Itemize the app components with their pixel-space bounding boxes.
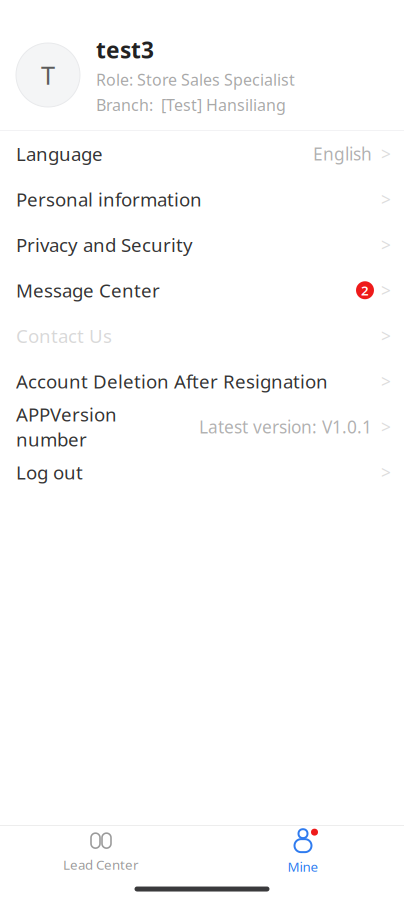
- button[interactable]: Mine: [243, 827, 363, 877]
- staticText: >: [381, 324, 391, 347]
- staticText: Account Deletion After Resignation: [16, 369, 328, 394]
- button[interactable]: Lead Center: [41, 827, 161, 877]
- staticText: Branch: [Test] Hansiliang: [96, 94, 286, 115]
- staticText: Contact Us: [16, 323, 112, 348]
- staticText: >: [381, 461, 391, 484]
- staticText: Latest version: V1.0.1: [199, 415, 372, 438]
- staticText: >: [381, 188, 391, 211]
- staticText: Privacy and Security: [16, 232, 193, 257]
- staticText: Mine: [287, 858, 318, 875]
- button[interactable]: Privacy and Security: [0, 222, 404, 267]
- button[interactable]: Log out: [0, 449, 404, 495]
- button[interactable]: Personal information: [0, 176, 404, 222]
- button[interactable]: Contact Us: [0, 313, 404, 358]
- button[interactable]: Account Deletion After Resignation: [0, 358, 404, 404]
- staticText: Message Center: [16, 278, 160, 303]
- staticText: >: [381, 370, 391, 393]
- staticText: Language: [16, 141, 103, 166]
- button[interactable]: APPVersion number: [0, 404, 404, 449]
- button[interactable]: T: [0, 20, 404, 130]
- staticText: >: [381, 142, 391, 165]
- staticText: Log out: [16, 460, 83, 485]
- button[interactable]: Language: [0, 131, 404, 176]
- staticText: English: [313, 142, 372, 165]
- staticText: T: [41, 58, 55, 92]
- staticText: APPVersion number: [16, 402, 117, 452]
- button[interactable]: Message Center: [0, 267, 404, 313]
- staticText: 2: [361, 281, 369, 299]
- staticText: Lead Center: [63, 856, 139, 873]
- staticText: >: [381, 415, 391, 438]
- staticText: Role: Store Sales Specialist: [96, 69, 295, 90]
- staticText: >: [381, 279, 391, 302]
- staticText: Personal information: [16, 187, 202, 212]
- staticText: test3: [96, 35, 154, 65]
- staticText: >: [381, 233, 391, 256]
